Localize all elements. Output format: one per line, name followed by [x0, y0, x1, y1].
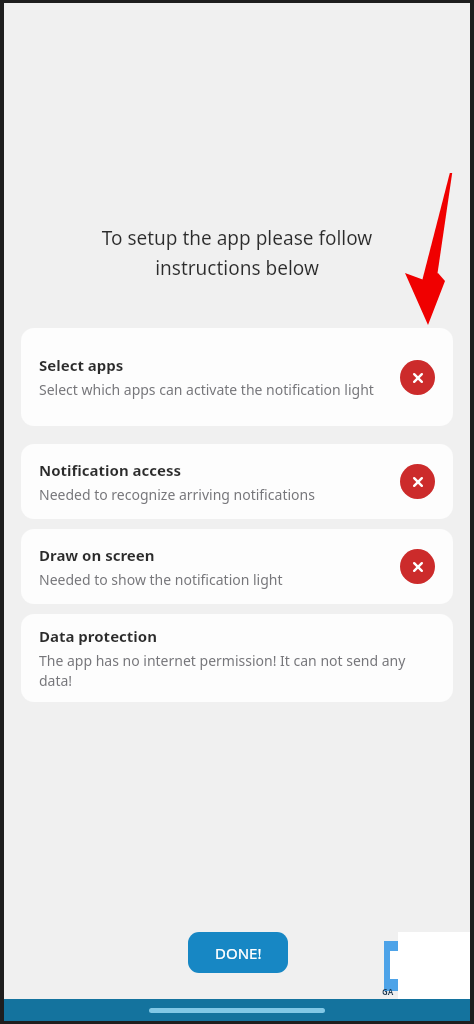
button[interactable]: Data protection — [21, 614, 453, 702]
button[interactable]: Notification access — [21, 444, 453, 519]
staticText: Needed to recognize arriving notificatio… — [39, 485, 315, 504]
button[interactable]: DONE! — [188, 932, 288, 973]
staticText: DONE! — [215, 943, 262, 963]
staticText: Select which apps can activate the notif… — [39, 380, 374, 399]
staticText: GA — [382, 986, 394, 997]
staticText: Notification access — [39, 460, 182, 480]
staticText: Needed to show the notification light — [39, 570, 283, 589]
button[interactable]: Draw on screen — [21, 529, 453, 604]
staticText: Select apps — [39, 355, 124, 375]
button[interactable]: Select apps — [21, 328, 453, 426]
button[interactable]: Not granted – tap to fix Select apps — [400, 360, 435, 395]
button[interactable]: Not granted – tap to fix Notification ac… — [400, 464, 435, 499]
button[interactable]: Not granted – tap to fix Draw on screen — [400, 549, 435, 584]
staticText: Data protection — [39, 626, 157, 646]
staticText: Draw on screen — [39, 545, 155, 565]
staticText: The app has no internet permission! It c… — [39, 651, 431, 691]
staticText: To setup the app please follow instructi… — [66, 225, 408, 280]
